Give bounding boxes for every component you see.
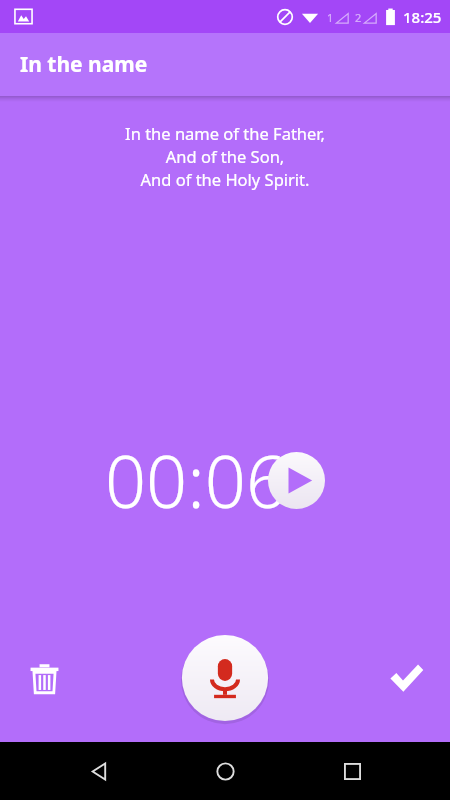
button[interactable]: Back xyxy=(71,743,127,799)
staticText: 1 xyxy=(327,10,334,25)
staticText: In the name of the Father, And of the So… xyxy=(24,122,426,191)
button[interactable]: Record xyxy=(181,634,269,722)
staticText: 2 xyxy=(355,10,362,25)
button[interactable]: Delete recording xyxy=(16,650,72,706)
staticText: 18:25 xyxy=(403,7,442,27)
staticText: 00:06 xyxy=(105,431,288,529)
button[interactable]: Play recording xyxy=(268,452,325,509)
staticText: In the name xyxy=(20,50,148,79)
button[interactable]: Recent apps xyxy=(324,743,380,799)
button[interactable]: Home xyxy=(197,743,253,799)
button[interactable]: Save recording xyxy=(378,650,434,706)
button[interactable]: In the name xyxy=(0,33,450,96)
